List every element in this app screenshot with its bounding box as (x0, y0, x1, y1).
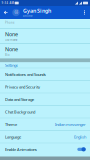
staticText: Phone (5, 21, 15, 24)
staticText: Data and Storage (5, 97, 34, 102)
staticText: Enable Animations (5, 147, 37, 152)
staticText: Notifications and Sounds (5, 72, 46, 77)
button[interactable]: Theme (0, 118, 90, 130)
button[interactable]: Back (0, 6, 11, 19)
staticText: Indian messenger (55, 122, 86, 127)
button[interactable]: Privacy and Security (0, 81, 90, 93)
button[interactable]: None (0, 44, 90, 58)
staticText: Language (5, 134, 21, 139)
staticText: Gyan Singh (23, 7, 51, 14)
button[interactable]: Profile photo (11, 6, 20, 19)
staticText: GS (14, 11, 17, 14)
staticText: Chat Background (5, 109, 35, 114)
button[interactable]: Settings (0, 62, 90, 68)
button[interactable]: Chat Background (0, 106, 90, 118)
button[interactable]: Language (0, 131, 90, 143)
staticText: Settings (5, 62, 18, 68)
staticText: English (74, 134, 86, 139)
staticText: 9:34 AM (1, 1, 13, 5)
staticText: online (23, 14, 33, 18)
button[interactable]: Data and Storage (0, 93, 90, 105)
staticText: Privacy and Security (5, 84, 40, 89)
staticText: None (5, 46, 18, 53)
button[interactable]: Gyan Singh (20, 6, 80, 19)
button[interactable]: Enable Animations (0, 143, 90, 155)
button[interactable]: More options (80, 6, 89, 19)
staticText: Bio (5, 53, 10, 57)
button[interactable]: Phone (0, 19, 90, 28)
staticText: None (5, 31, 18, 38)
staticText: Theme (5, 122, 17, 127)
button[interactable]: None (0, 29, 90, 43)
button[interactable]: Notifications and Sounds (0, 68, 90, 80)
staticText: Username (5, 38, 18, 42)
